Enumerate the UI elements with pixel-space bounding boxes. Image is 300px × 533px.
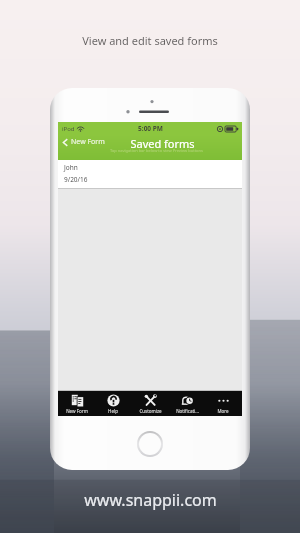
button[interactable]: Notificati... bbox=[169, 391, 205, 416]
staticText: Tap navigation bar below to view Preview… bbox=[110, 148, 203, 153]
staticText: View and edit saved forms bbox=[82, 33, 218, 48]
staticText: New Form bbox=[66, 408, 88, 414]
button[interactable]: Customize bbox=[132, 391, 168, 416]
button[interactable]: John bbox=[58, 160, 242, 188]
button[interactable]: New Form bbox=[61, 137, 105, 147]
staticText: New Form bbox=[71, 137, 105, 147]
staticText: www.snappii.com bbox=[84, 489, 217, 511]
staticText: 9/20/16 bbox=[64, 175, 88, 184]
button[interactable]: More bbox=[205, 391, 241, 416]
staticText: Customize bbox=[139, 408, 162, 414]
staticText: John bbox=[64, 163, 78, 172]
staticText: 5:00 PM bbox=[138, 124, 163, 133]
staticText: Saved forms bbox=[130, 136, 195, 151]
button[interactable]: Help bbox=[95, 391, 131, 416]
staticText: More bbox=[217, 408, 229, 414]
staticText: Notificati... bbox=[176, 408, 199, 414]
staticText: Help bbox=[108, 408, 118, 414]
button[interactable]: New Form bbox=[59, 391, 95, 416]
staticText: iPod bbox=[62, 125, 75, 133]
